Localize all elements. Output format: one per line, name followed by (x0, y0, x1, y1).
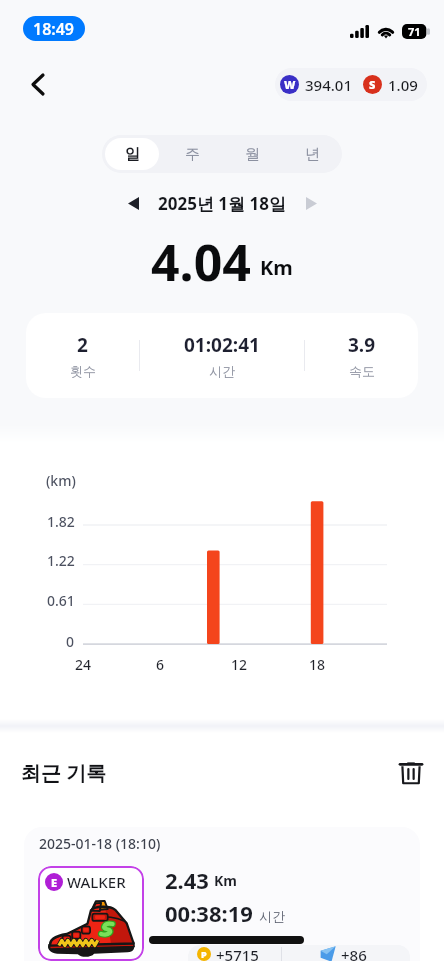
staticText: 2025-01-18 (18:10) (39, 834, 161, 853)
staticText: 12 (231, 655, 248, 674)
staticText: 주 (185, 145, 200, 164)
staticText: Km (260, 254, 293, 281)
staticText: 00:38:19 (165, 898, 253, 928)
staticText: +5715 (216, 945, 259, 961)
staticText: 3.9 (348, 332, 376, 358)
staticText: 최근 기록 (21, 759, 107, 786)
staticText: 18:49 (33, 18, 75, 40)
staticText: WALKER (67, 872, 126, 892)
staticText: 71 (408, 24, 421, 39)
button[interactable]: 2025-01-18 (18:10) (24, 827, 420, 961)
button[interactable]: 2 (26, 332, 139, 379)
button[interactable]: +86 (320, 945, 400, 961)
staticText: 0.61 (47, 591, 75, 610)
staticText: S (369, 77, 376, 92)
staticText: 1.82 (47, 512, 75, 531)
staticText: W (284, 77, 296, 92)
staticText: 1.22 (47, 551, 75, 570)
button[interactable]: P (197, 945, 291, 961)
staticText: 년 (305, 145, 320, 164)
staticText: E (51, 875, 58, 890)
staticText: Km (214, 871, 237, 890)
button[interactable]: Next day (296, 188, 326, 218)
staticText: 일 (125, 145, 140, 164)
button[interactable]: W (275, 68, 427, 101)
button[interactable]: 년 (285, 138, 339, 170)
staticText: 394.01 (305, 75, 352, 95)
staticText: 시간 (209, 363, 235, 379)
staticText: 18 (309, 655, 326, 674)
button[interactable]: 01:02:41 (140, 332, 304, 379)
staticText: 0 (66, 632, 75, 651)
staticText: 4.04 (151, 228, 251, 296)
staticText: 월 (245, 145, 260, 164)
staticText: +86 (341, 945, 367, 961)
staticText: 시간 (259, 908, 285, 924)
staticText: 2 (77, 332, 88, 358)
staticText: 6 (156, 655, 165, 674)
staticText: (km) (46, 471, 76, 490)
staticText: 2025년 1월 18일 (158, 192, 286, 215)
button[interactable]: Previous day (118, 188, 148, 218)
button[interactable]: 3.9 (305, 332, 418, 379)
staticText: 1.09 (388, 75, 418, 95)
staticText: 횟수 (70, 363, 96, 379)
staticText: 01:02:41 (184, 332, 260, 358)
button[interactable]: 월 (225, 138, 279, 170)
button[interactable]: Delete records (391, 752, 431, 792)
button[interactable]: Back (19, 66, 56, 103)
staticText: 24 (75, 655, 92, 674)
button[interactable]: 일 (105, 138, 159, 170)
staticText: 속도 (349, 363, 375, 379)
staticText: P (201, 948, 207, 960)
staticText: 2.43 (165, 865, 209, 895)
button[interactable]: 주 (165, 138, 219, 170)
